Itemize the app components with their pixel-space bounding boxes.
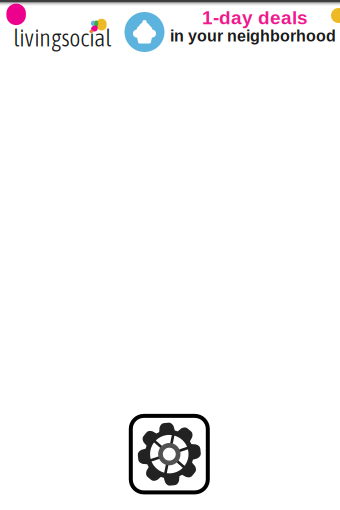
staticText: livingsocial <box>13 24 111 52</box>
button[interactable]: Loading <box>129 414 210 494</box>
staticText: 1-day deals <box>202 7 308 28</box>
staticText: in your neighborhood <box>170 27 336 45</box>
